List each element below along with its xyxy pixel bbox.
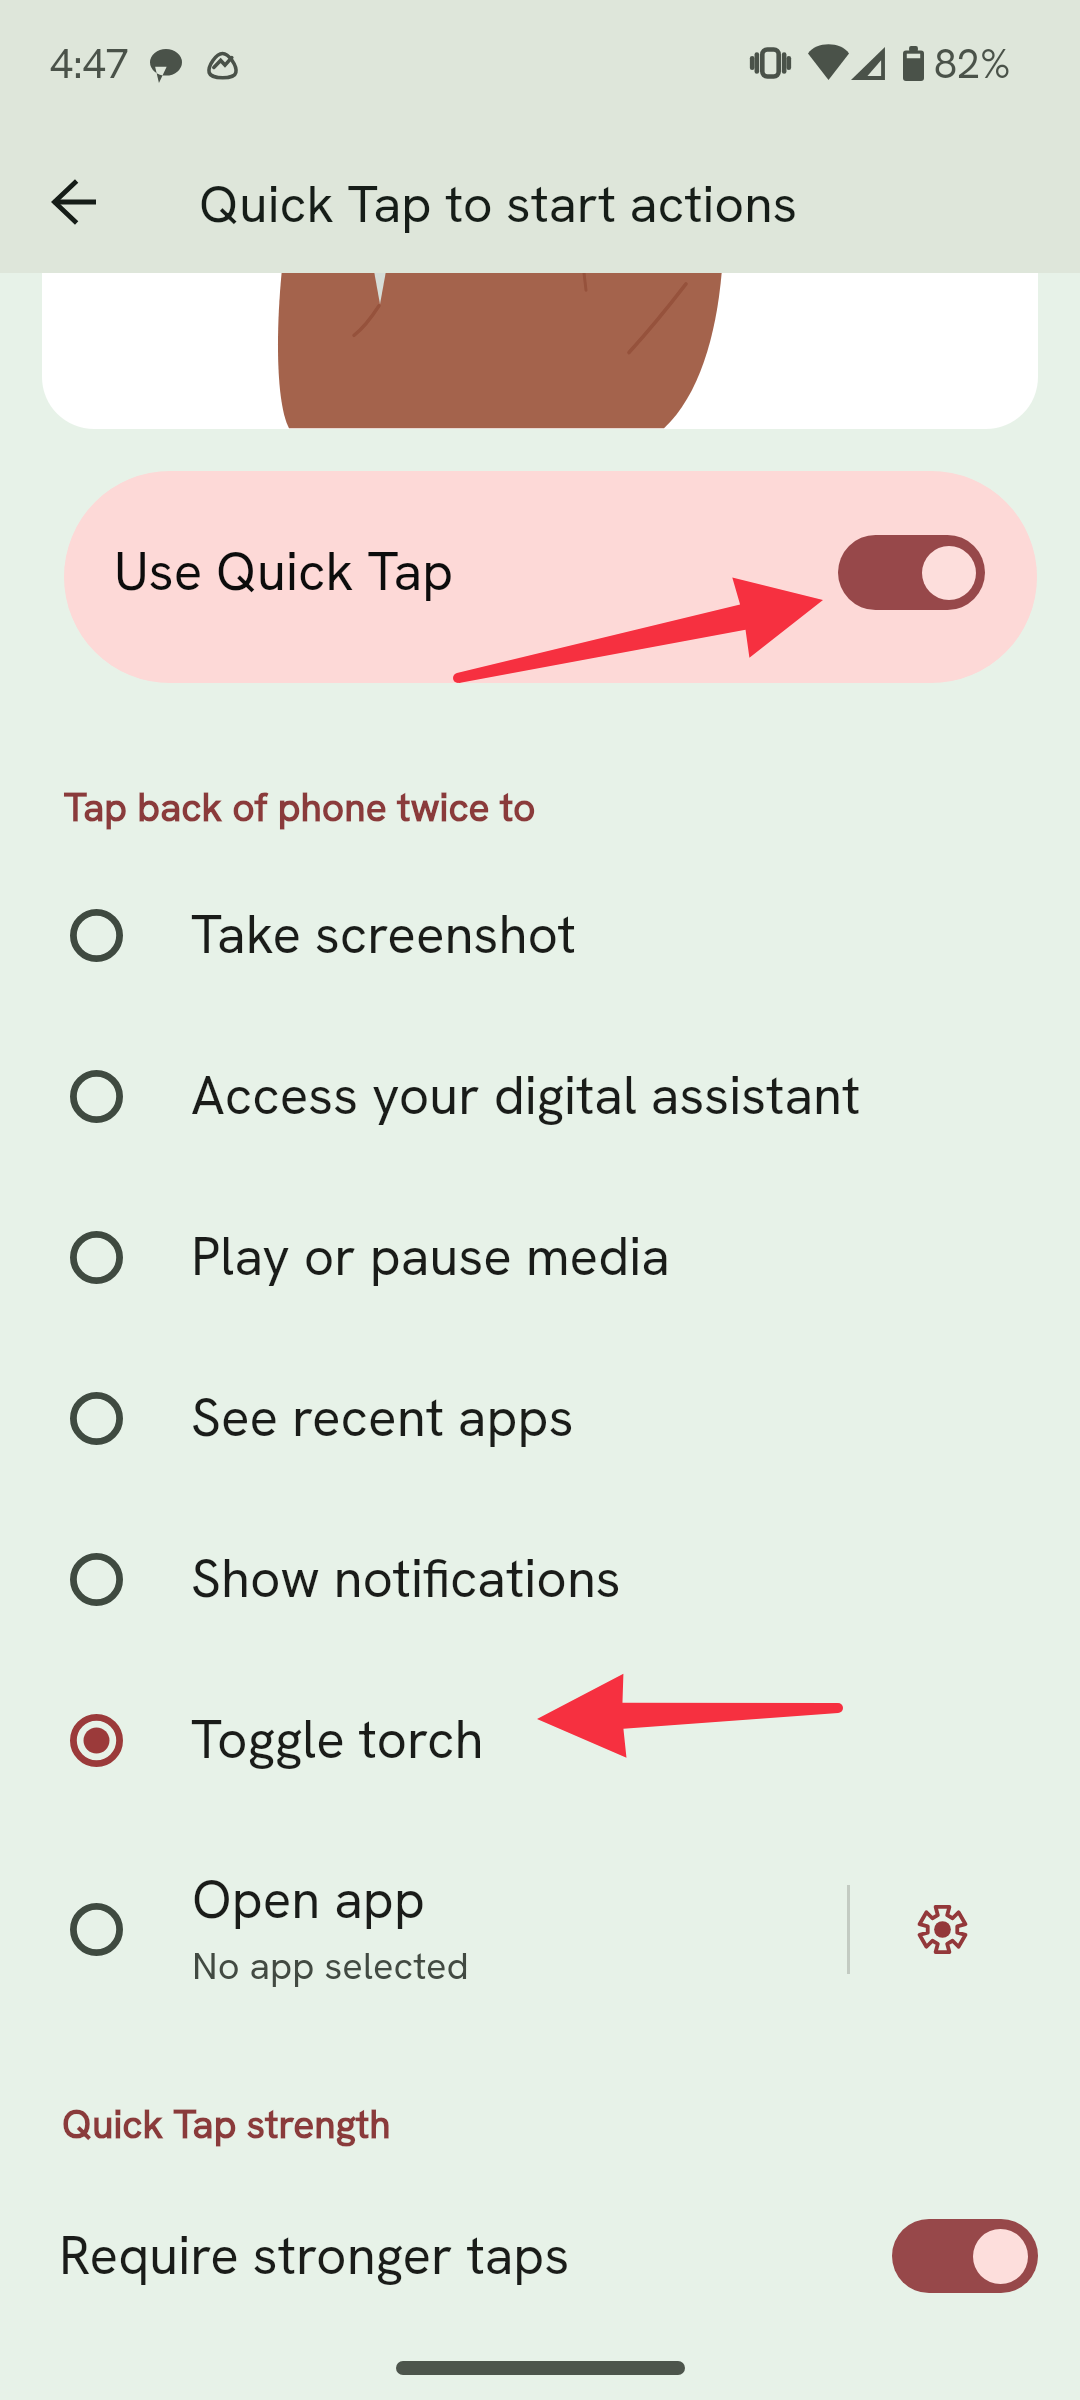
button[interactable] (0, 1834, 1080, 2024)
staticText: No app selected (192, 1941, 469, 1991)
staticText: Quick Tap strength (62, 2099, 391, 2150)
staticText: Access your digital assistant (191, 1061, 861, 1130)
staticText: Take screenshot (191, 900, 576, 969)
button[interactable]: Show notifications (0, 1499, 1080, 1659)
staticText: See recent apps (191, 1383, 574, 1452)
staticText: Toggle torch (191, 1705, 484, 1774)
staticText: Use Quick Tap (114, 537, 454, 606)
button[interactable]: Toggle torch (0, 1660, 1080, 1820)
staticText: 4:47 (50, 37, 129, 90)
button[interactable]: See recent apps (0, 1338, 1080, 1498)
button[interactable]: Use Quick Tap (64, 471, 1037, 683)
staticText: Tap back of phone twice to (64, 782, 536, 833)
button[interactable]: Navigate up (26, 154, 122, 250)
button[interactable]: Take screenshot (0, 855, 1080, 1015)
staticText: Require stronger taps (59, 2221, 570, 2290)
button[interactable]: Play or pause media (0, 1177, 1080, 1337)
staticText: Play or pause media (191, 1222, 670, 1291)
staticText: Open app (192, 1865, 425, 1934)
button[interactable]: Access your digital assistant (0, 1016, 1080, 1176)
staticText: 82% (934, 37, 1011, 90)
button[interactable]: Require stronger taps (0, 2176, 1080, 2336)
button[interactable]: Open app settings (892, 1879, 992, 1979)
staticText: Quick Tap to start actions (199, 170, 798, 238)
staticText: Show notifications (191, 1544, 621, 1613)
